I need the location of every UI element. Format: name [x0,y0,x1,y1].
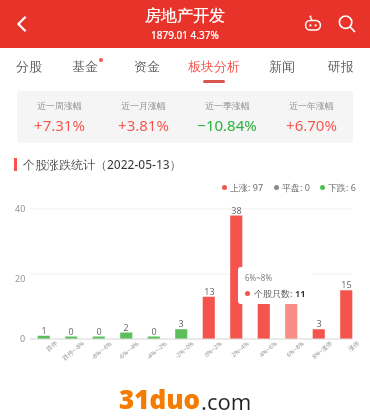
staticText: 新闻 [269,58,295,74]
staticText: +7.31% [34,115,85,135]
button[interactable]: Assistant [296,7,330,41]
staticText: 个股只数: [254,287,295,299]
staticText: 研报 [328,58,354,74]
staticText: 跌停 [45,339,59,353]
staticText: 6%~8% [245,272,273,283]
staticText: 上涨: 97 [230,181,264,193]
staticText: 板块分析 [188,58,240,74]
button[interactable]: 板块分析 [176,48,252,84]
staticText: -4%~-2% [145,339,169,361]
staticText: 平盘: 0 [282,181,310,193]
staticText: 1 [41,324,47,336]
button[interactable]: Search [330,7,364,41]
staticText: 近一季涨幅 [205,100,250,111]
staticText: 资金 [134,58,160,74]
button[interactable]: Back [0,2,44,46]
staticText: 40 [15,202,26,214]
staticText: 3 [316,317,322,329]
staticText: 近一年涨幅 [289,100,334,111]
staticText: 2%~4% [230,339,251,359]
staticText: 15 [341,278,352,290]
staticText: 下跌: 6 [328,181,356,193]
staticText: 11 [295,287,306,299]
staticText: 13 [259,285,270,297]
staticText: 0%~2% [203,339,224,359]
staticText: 11 [286,291,297,303]
staticText: -2%~0% [173,339,196,360]
button[interactable]: 新闻 [252,48,311,84]
staticText: -6%~-4% [117,339,141,361]
staticText: 4%~6% [258,339,279,359]
staticText: +6.70% [286,115,337,135]
staticText: 3 [178,317,184,329]
staticText: 1879.01 4.37% [151,28,219,42]
button[interactable]: 分股 [0,48,58,84]
button[interactable]: 资金 [117,48,176,84]
button[interactable]: 基金 [58,48,117,84]
button[interactable]: 研报 [311,48,370,84]
staticText: 跌停~-8% [61,339,86,362]
staticText: 涨停 [347,339,361,353]
staticText: +3.81% [118,115,169,135]
staticText: 基金 [72,58,98,74]
staticText: 8%~涨停 [310,339,334,361]
staticText: 6%~8% [285,339,306,359]
staticText: 0 [20,332,26,344]
staticText: -8%~-6% [90,339,114,361]
staticText: .com [201,386,252,416]
staticText: 20 [15,272,26,284]
staticText: 0 [96,325,102,337]
staticText: 38 [231,204,242,216]
staticText: 2 [123,321,129,333]
staticText: 分股 [16,58,42,74]
staticText: 近一周涨幅 [37,100,82,111]
staticText: 0 [68,325,74,337]
staticText: 13 [204,285,215,297]
staticText: 近一月涨幅 [121,100,166,111]
staticText: 31duo [119,381,201,416]
staticText: −10.84% [197,115,257,135]
staticText: 个股涨跌统计（2022-05-13） [23,156,182,172]
staticText: 0 [151,325,157,337]
staticText: 房地产开发 [145,6,225,26]
